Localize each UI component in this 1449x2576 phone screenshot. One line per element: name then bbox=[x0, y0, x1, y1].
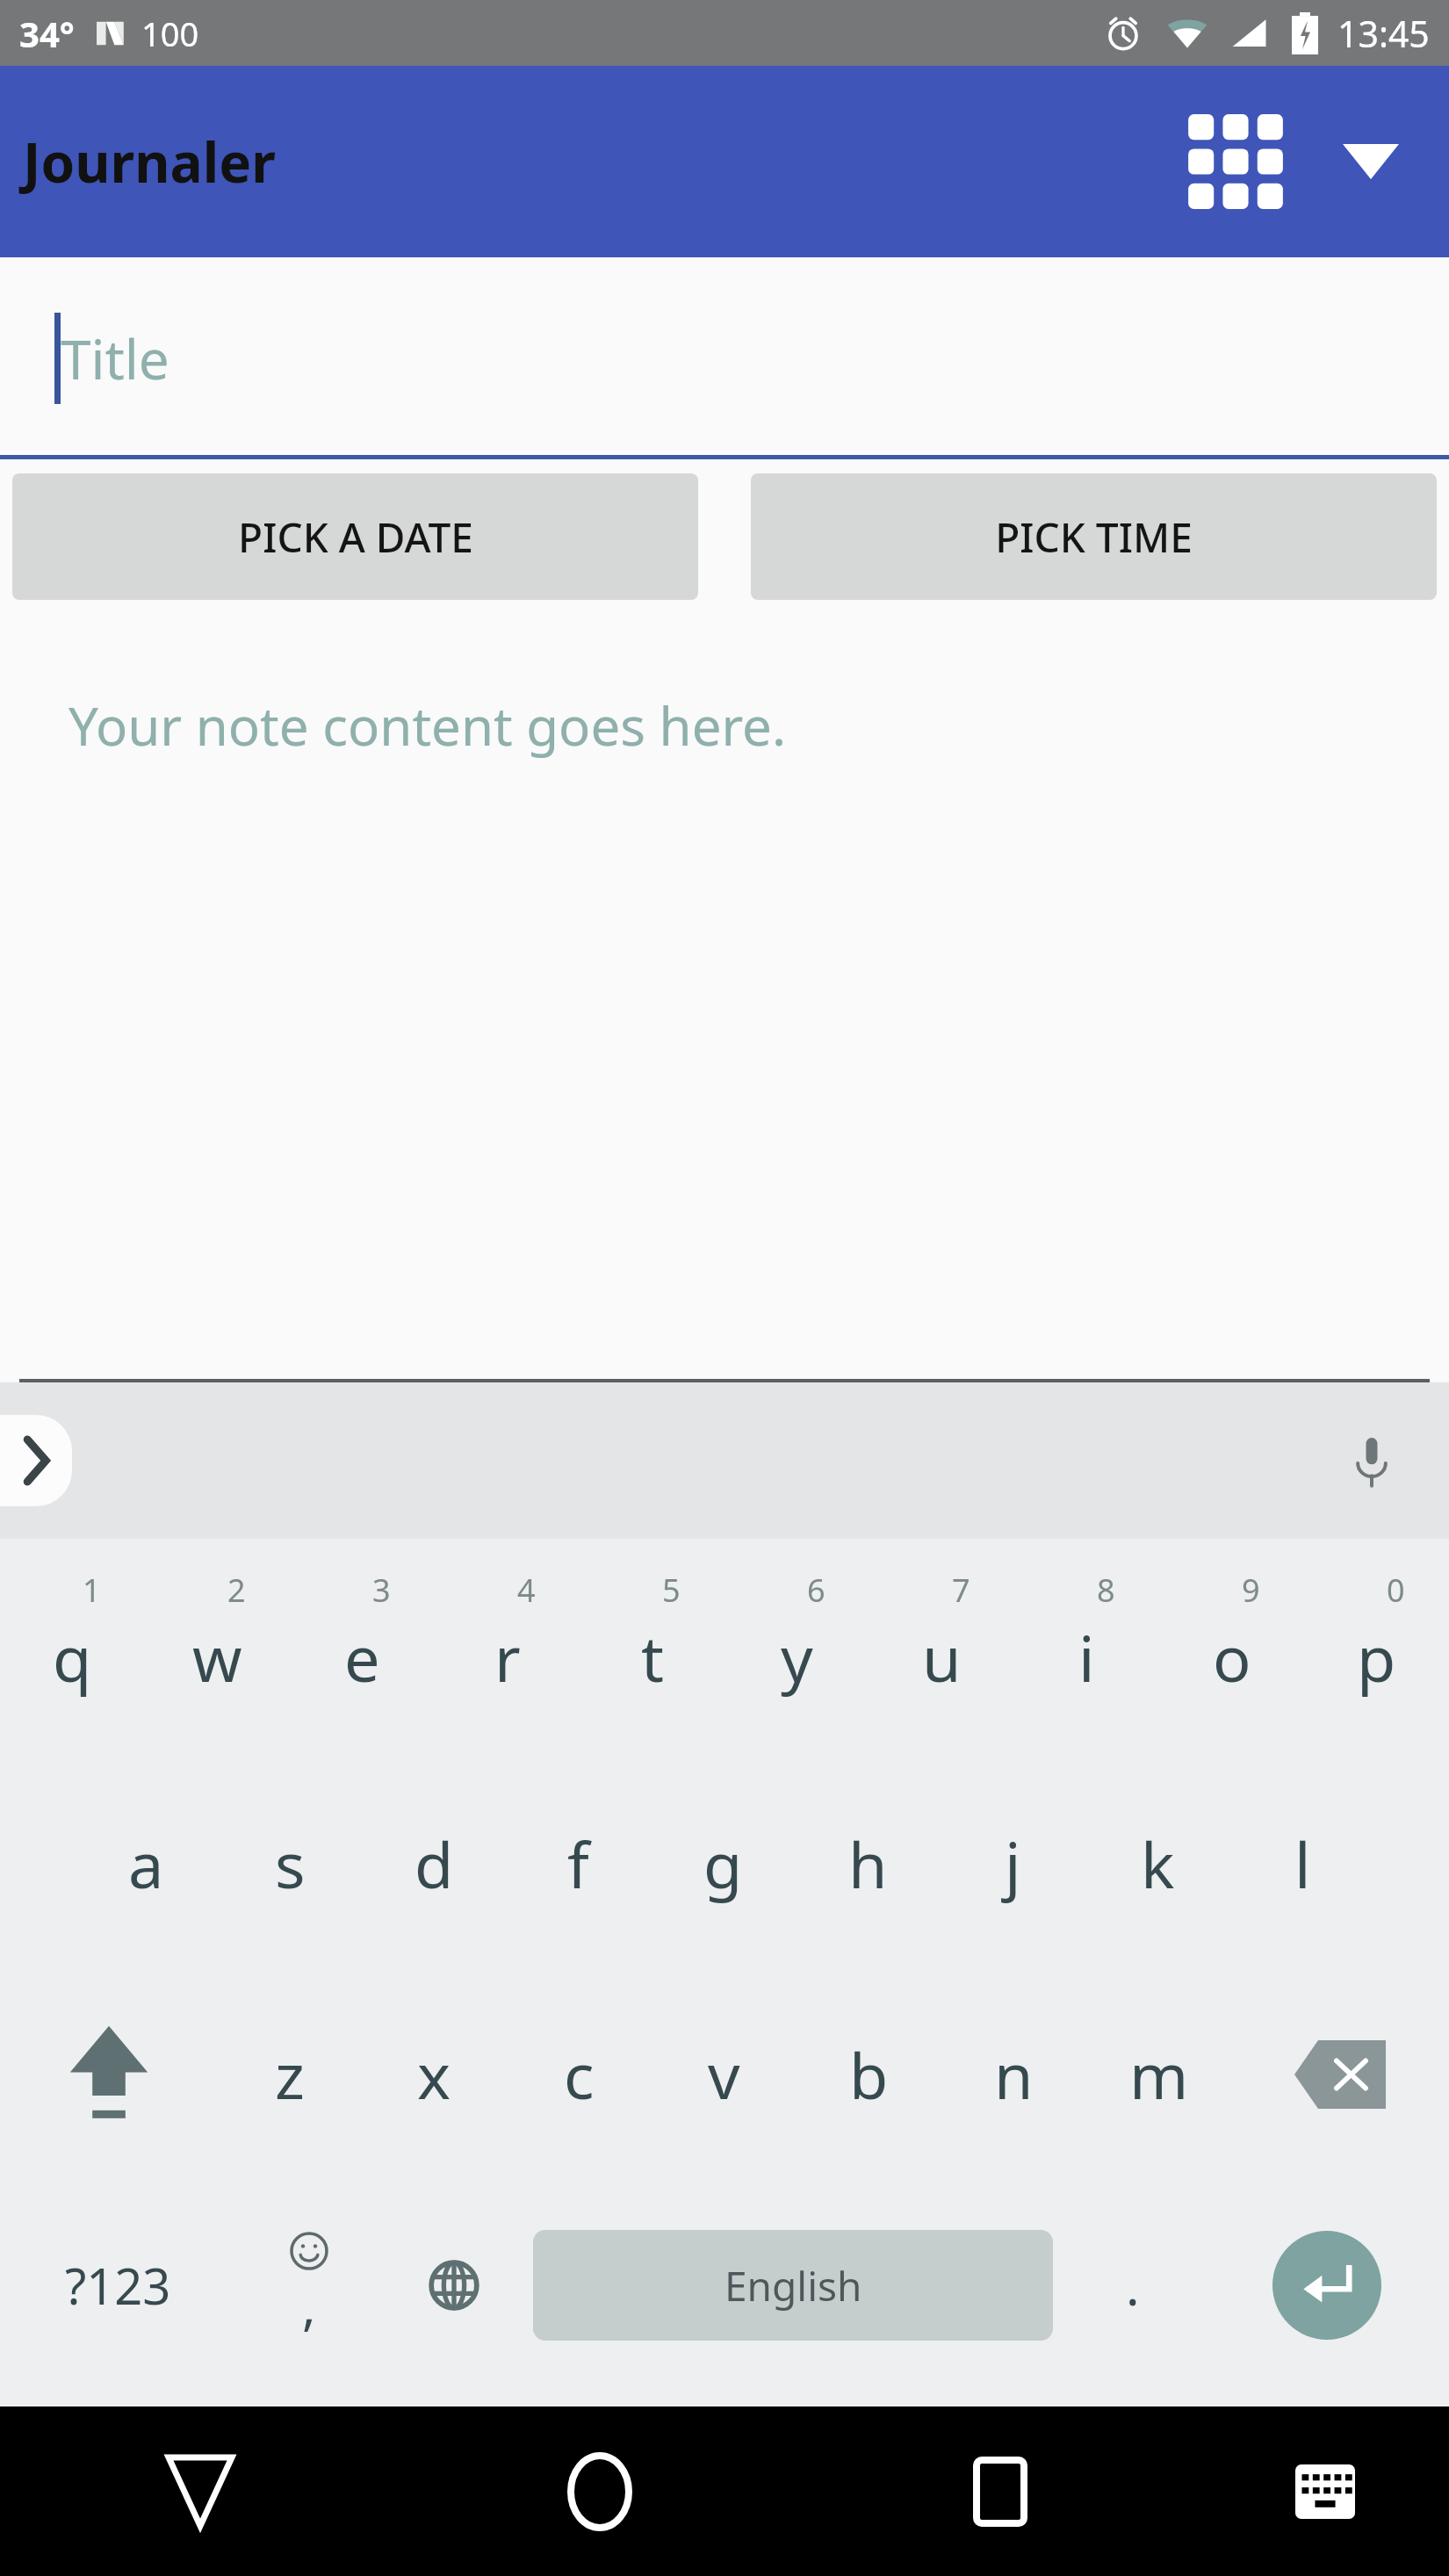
button[interactable]: 3 bbox=[290, 1539, 435, 1758]
staticText: f bbox=[567, 1821, 589, 1907]
staticText: 34° bbox=[19, 10, 75, 57]
staticText: Journaler bbox=[23, 125, 276, 198]
staticText: 2 bbox=[227, 1569, 246, 1612]
staticText: Your note content goes here. bbox=[68, 689, 787, 761]
staticText: 4 bbox=[517, 1569, 536, 1612]
staticText: r bbox=[494, 1614, 521, 1700]
staticText: . bbox=[1126, 2251, 1140, 2320]
staticText: g bbox=[703, 1821, 743, 1907]
button[interactable]: Change language bbox=[381, 2180, 526, 2391]
staticText: h bbox=[848, 1821, 888, 1907]
button[interactable]: English bbox=[533, 2230, 1053, 2341]
button[interactable]: s bbox=[218, 1758, 362, 1969]
button[interactable]: k bbox=[1085, 1758, 1230, 1969]
staticText: 1 bbox=[83, 1569, 101, 1612]
staticText: w bbox=[192, 1614, 242, 1700]
button[interactable]: ?123 bbox=[0, 2180, 236, 2391]
button[interactable]: 2 bbox=[145, 1539, 290, 1758]
staticText: c bbox=[564, 2031, 595, 2118]
staticText: 9 bbox=[1242, 1569, 1260, 1612]
button[interactable]: Back bbox=[0, 2406, 400, 2576]
staticText: z bbox=[275, 2031, 305, 2118]
staticText: 6 bbox=[807, 1569, 825, 1612]
staticText: p bbox=[1357, 1614, 1396, 1700]
staticText: 13:45 bbox=[1337, 9, 1430, 58]
button[interactable]: l bbox=[1230, 1758, 1375, 1969]
button[interactable]: z bbox=[217, 1969, 362, 2180]
button[interactable]: 6 bbox=[724, 1539, 869, 1758]
button[interactable]: a bbox=[74, 1758, 218, 1969]
button[interactable]: PICK A DATE bbox=[12, 473, 698, 600]
staticText: PICK A DATE bbox=[238, 509, 473, 565]
button[interactable]: Hide keyboard bbox=[1200, 2406, 1449, 2576]
staticText: i bbox=[1078, 1614, 1095, 1700]
staticText: 100 bbox=[141, 11, 199, 56]
button[interactable]: b bbox=[797, 1969, 941, 2180]
button[interactable]: Grid view bbox=[1170, 96, 1301, 227]
staticText: English bbox=[724, 2258, 862, 2313]
staticText: x bbox=[417, 2031, 451, 2118]
button[interactable]: j bbox=[941, 1758, 1085, 1969]
staticText: v bbox=[708, 2031, 740, 2118]
button[interactable]: 8 bbox=[1014, 1539, 1159, 1758]
staticText: d bbox=[415, 1821, 454, 1907]
button[interactable]: 4 bbox=[435, 1539, 580, 1758]
button[interactable]: Shift bbox=[0, 1969, 217, 2180]
staticText: PICK TIME bbox=[995, 509, 1193, 565]
staticText: m bbox=[1129, 2031, 1189, 2118]
staticText: j bbox=[1005, 1821, 1021, 1907]
staticText: e bbox=[344, 1614, 380, 1700]
button[interactable]: . bbox=[1060, 2180, 1205, 2391]
button[interactable]: 0 bbox=[1304, 1539, 1449, 1758]
staticText: , bbox=[302, 2270, 316, 2340]
button[interactable]: Title bbox=[0, 257, 1449, 459]
staticText: 0 bbox=[1387, 1569, 1405, 1612]
button[interactable]: m bbox=[1086, 1969, 1231, 2180]
staticText: n bbox=[994, 2031, 1034, 2118]
button[interactable]: Expand suggestions bbox=[0, 1415, 72, 1506]
button[interactable]: Voice input bbox=[1330, 1418, 1414, 1503]
staticText: 8 bbox=[1097, 1569, 1115, 1612]
button[interactable]: n bbox=[941, 1969, 1086, 2180]
staticText: l bbox=[1294, 1821, 1311, 1907]
staticText: s bbox=[275, 1821, 306, 1907]
staticText: a bbox=[128, 1821, 164, 1907]
button[interactable]: c bbox=[507, 1969, 652, 2180]
staticText: o bbox=[1213, 1614, 1251, 1700]
button[interactable]: Backspace bbox=[1231, 1969, 1449, 2180]
staticText: 7 bbox=[952, 1569, 970, 1612]
button[interactable]: 7 bbox=[869, 1539, 1014, 1758]
button[interactable]: x bbox=[362, 1969, 507, 2180]
button[interactable]: More options bbox=[1323, 113, 1419, 210]
button[interactable]: v bbox=[652, 1969, 797, 2180]
button[interactable]: Home bbox=[400, 2406, 800, 2576]
staticText: ?123 bbox=[65, 2252, 171, 2319]
staticText: b bbox=[849, 2031, 889, 2118]
button[interactable]: Your note content goes here. bbox=[0, 635, 1449, 1382]
staticText: k bbox=[1141, 1821, 1175, 1907]
button[interactable]: PICK TIME bbox=[751, 473, 1437, 600]
button[interactable]: g bbox=[651, 1758, 796, 1969]
button[interactable]: d bbox=[362, 1758, 506, 1969]
button[interactable]: Enter bbox=[1205, 2180, 1449, 2391]
staticText: u bbox=[922, 1614, 962, 1700]
button[interactable]: 1 bbox=[0, 1539, 145, 1758]
staticText: 5 bbox=[662, 1569, 681, 1612]
staticText: q bbox=[53, 1614, 92, 1700]
staticText: 3 bbox=[372, 1569, 391, 1612]
staticText: y bbox=[781, 1614, 813, 1700]
button[interactable]: Recents bbox=[800, 2406, 1200, 2576]
staticText: Title bbox=[61, 321, 169, 395]
button[interactable]: 5 bbox=[580, 1539, 724, 1758]
staticText: t bbox=[641, 1614, 664, 1700]
button[interactable]: 9 bbox=[1159, 1539, 1304, 1758]
button[interactable]: , bbox=[236, 2180, 381, 2391]
button[interactable]: f bbox=[506, 1758, 651, 1969]
button[interactable]: h bbox=[796, 1758, 941, 1969]
